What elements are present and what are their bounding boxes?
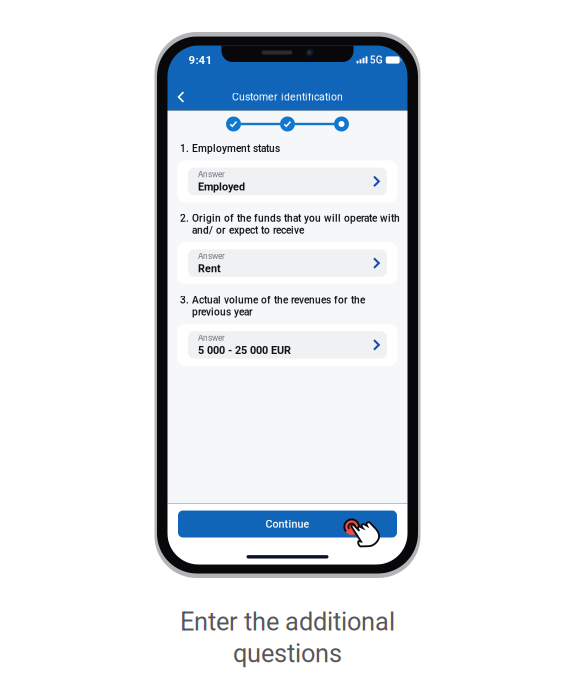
staticText: 3. bbox=[180, 294, 189, 306]
staticText: Answer bbox=[198, 333, 225, 343]
button[interactable]: Continue bbox=[167, 510, 407, 537]
staticText: Employed bbox=[198, 180, 245, 193]
staticText: 9:41 bbox=[188, 53, 212, 67]
staticText: Actual volume of the revenues for the pr… bbox=[192, 294, 365, 318]
staticText: 2. bbox=[180, 212, 189, 224]
button[interactable]: Answer bbox=[167, 160, 407, 202]
staticText: 1. bbox=[180, 142, 189, 154]
staticText: Enter the additional bbox=[180, 607, 395, 637]
button[interactable]: Answer bbox=[167, 242, 407, 284]
button[interactable]: Answer bbox=[167, 324, 407, 366]
staticText: Customer identification bbox=[232, 91, 343, 103]
staticText: Origin of the funds that you will operat… bbox=[192, 212, 400, 236]
staticText: questions bbox=[233, 639, 342, 668]
staticText: 5G bbox=[370, 54, 383, 66]
staticText: Answer bbox=[198, 170, 225, 179]
button[interactable]: Back bbox=[170, 86, 192, 108]
staticText: Employment status bbox=[192, 142, 280, 154]
staticText: 5 000 - 25 000 EUR bbox=[198, 344, 291, 357]
staticText: Continue bbox=[265, 518, 309, 530]
staticText: Answer bbox=[198, 251, 225, 261]
staticText: Rent bbox=[198, 262, 221, 275]
